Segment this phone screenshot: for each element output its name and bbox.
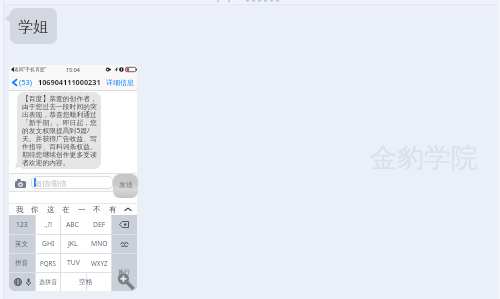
button[interactable]: MNO — [86, 234, 112, 253]
button[interactable]: DEF — [86, 215, 112, 234]
button[interactable]: 选拼音 — [35, 272, 61, 291]
button[interactable]: WXYZ — [86, 253, 112, 272]
staticText: 发送 — [119, 180, 133, 189]
button[interactable]: PQRS — [35, 253, 61, 272]
button[interactable]: 我 — [16, 205, 24, 214]
staticText: TUV — [67, 258, 80, 267]
staticText: 【百度】亲爱的创作者， 由于您过去一段时间的突 出表现，恭喜您顺利通过 「新手期… — [22, 94, 97, 167]
button[interactable]: Zoom in — [115, 270, 137, 292]
staticText: (53) — [19, 77, 33, 87]
staticText: 换行 — [118, 268, 130, 276]
staticText: 金豹学院 — [370, 141, 478, 175]
button[interactable]: 这 — [47, 205, 55, 214]
staticText: JKL — [68, 239, 78, 248]
button[interactable]: GHI — [35, 234, 61, 253]
button[interactable]: 在 — [62, 205, 70, 214]
button[interactable]: 空格 — [60, 272, 111, 291]
button[interactable]: Delete — [111, 215, 137, 234]
staticText: MNO — [91, 239, 108, 248]
button[interactable]: Switch language — [12, 272, 23, 291]
staticText: 学姐 — [18, 18, 48, 37]
button[interactable]: More candidates — [124, 206, 132, 213]
button[interactable]: 123 — [9, 215, 35, 234]
button[interactable]: TUV — [60, 253, 86, 272]
staticText: ABC — [66, 220, 80, 229]
button[interactable]: Shift — [111, 234, 137, 253]
staticText: 英文 — [15, 240, 29, 248]
staticText: 选拼音 — [39, 278, 58, 286]
button[interactable]: New line — [111, 253, 137, 291]
staticText: 123 — [16, 220, 28, 229]
staticText: 106904111000231 — [38, 77, 101, 87]
button[interactable]: ABC — [60, 215, 86, 234]
button[interactable]: 你 — [31, 205, 39, 214]
button[interactable]: 详细信息 — [106, 78, 134, 87]
button[interactable]: .,?! — [35, 215, 61, 234]
staticText: 空格 — [79, 277, 93, 286]
staticText: .,?! — [44, 220, 52, 229]
staticText: GHI — [42, 239, 55, 248]
staticText: PQRS — [40, 259, 56, 267]
staticText: WXYZ — [91, 259, 108, 267]
staticText: DEF — [93, 220, 106, 229]
staticText: 15:04 — [66, 66, 80, 73]
button[interactable]: 短信/彩信 — [31, 176, 113, 189]
staticText: 拼音 — [15, 259, 29, 267]
button[interactable]: 发送 — [113, 174, 138, 198]
staticText: 返回“手机百度” — [14, 66, 47, 73]
button[interactable]: 学姐 — [10, 8, 57, 44]
button[interactable]: 英文 — [9, 234, 35, 253]
button[interactable]: 不 — [93, 205, 101, 214]
button[interactable]: (53) — [12, 77, 33, 87]
staticText: 短信/彩信 — [35, 178, 67, 188]
button[interactable]: 一 — [78, 205, 86, 214]
button[interactable]: Camera — [15, 179, 26, 188]
button[interactable]: Voice input — [23, 272, 34, 291]
button[interactable]: 【百度】亲爱的创作者， 由于您过去一段时间的突 出表现，恭喜您顺利通过 「新手期… — [17, 92, 101, 169]
button[interactable]: JKL — [60, 234, 86, 253]
button[interactable]: 拼音 — [9, 253, 35, 272]
button[interactable]: 有 — [109, 205, 117, 214]
